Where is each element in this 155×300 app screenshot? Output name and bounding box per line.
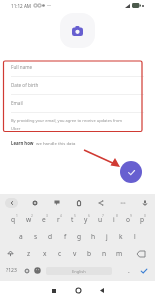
button[interactable]: f <box>58 228 72 245</box>
staticText: g <box>77 232 82 241</box>
button[interactable]: d <box>43 228 58 245</box>
staticText: ?123 <box>6 267 17 274</box>
staticText: l <box>134 232 136 241</box>
button[interactable]: Email <box>11 95 144 113</box>
button[interactable]: k <box>114 228 128 245</box>
button[interactable]: a <box>13 228 28 245</box>
staticText: 5 <box>74 214 76 218</box>
staticText: English <box>72 269 86 274</box>
button[interactable]: w <box>21 211 36 228</box>
button[interactable]: n <box>97 245 112 262</box>
button[interactable]: Emoji <box>32 262 43 279</box>
button[interactable]: Learn how <box>11 140 76 146</box>
button[interactable]: Stickers <box>52 198 62 208</box>
staticText: By providing your email, you agree to re… <box>11 118 123 131</box>
button[interactable]: Date of birth <box>11 77 144 95</box>
button[interactable]: p <box>135 211 149 228</box>
staticText: 11:12 AM <box>11 3 32 9</box>
staticText: w <box>26 215 32 224</box>
button[interactable]: Enter <box>134 262 154 279</box>
button[interactable]: Settings <box>21 262 32 279</box>
staticText: n <box>102 249 107 258</box>
staticText: t <box>71 215 74 224</box>
button[interactable]: Expand toolbar <box>5 198 18 208</box>
staticText: Learn how <box>11 140 34 146</box>
staticText: y <box>84 215 88 224</box>
staticText: v <box>73 249 77 258</box>
button[interactable]: Share <box>96 198 106 208</box>
staticText: 4 <box>60 214 62 218</box>
staticText: we handle this data <box>36 140 76 146</box>
button[interactable]: Microphone <box>140 198 150 208</box>
button[interactable]: Shift <box>0 245 21 262</box>
button[interactable]: Full name <box>11 59 144 77</box>
staticText: a <box>19 232 23 241</box>
staticText: d <box>48 232 53 241</box>
staticText: j <box>106 232 108 241</box>
button[interactable]: s <box>28 228 43 245</box>
staticText: r <box>57 215 60 224</box>
button[interactable]: Add photo <box>60 13 95 48</box>
staticText: 0 <box>144 214 146 218</box>
button[interactable]: x <box>37 245 52 262</box>
button[interactable]: Settings <box>30 198 40 208</box>
button[interactable]: Home <box>66 281 90 300</box>
button[interactable]: r <box>51 211 65 228</box>
staticText: o <box>126 215 130 224</box>
staticText: p <box>140 215 145 224</box>
staticText: h <box>91 232 96 241</box>
staticText: 6 <box>88 214 90 218</box>
staticText: m <box>116 249 123 258</box>
staticText: . <box>128 266 130 275</box>
button[interactable]: . <box>123 262 134 279</box>
button[interactable]: l <box>128 228 142 245</box>
staticText: q <box>11 215 16 224</box>
staticText: b <box>87 249 92 258</box>
button[interactable]: English <box>46 267 112 275</box>
button[interactable]: Back <box>90 281 114 300</box>
button[interactable]: b <box>82 245 97 262</box>
staticText: k <box>119 232 123 241</box>
staticText: Email <box>11 100 23 106</box>
staticText: z <box>27 249 31 258</box>
button[interactable]: q <box>6 211 21 228</box>
staticText: x <box>43 249 47 258</box>
button[interactable]: t <box>65 211 79 228</box>
button[interactable]: Backspace <box>127 245 155 262</box>
staticText: c <box>58 249 62 258</box>
button[interactable]: h <box>86 228 100 245</box>
button[interactable]: m <box>112 245 127 262</box>
staticText: 7 <box>102 214 104 218</box>
staticText: 8 <box>116 214 118 218</box>
button[interactable]: e <box>36 211 51 228</box>
staticText: u <box>98 215 103 224</box>
button[interactable]: c <box>52 245 67 262</box>
button[interactable]: g <box>72 228 86 245</box>
button[interactable]: z <box>21 245 37 262</box>
button[interactable]: y <box>79 211 93 228</box>
button[interactable]: i <box>107 211 121 228</box>
button[interactable]: Clipboard <box>74 198 84 208</box>
button[interactable]: j <box>100 228 114 245</box>
staticText: s <box>34 232 38 241</box>
staticText: 3 <box>46 214 48 218</box>
staticText: Date of birth <box>11 82 39 88</box>
staticText: e <box>42 215 46 224</box>
staticText: i <box>113 215 115 224</box>
staticText: f <box>64 232 67 241</box>
button[interactable]: u <box>93 211 107 228</box>
button[interactable]: ?123 <box>1 262 21 279</box>
staticText: 9 <box>130 214 132 218</box>
staticText: Full name <box>11 64 33 70</box>
staticText: 1 <box>16 214 18 218</box>
button[interactable]: o <box>121 211 135 228</box>
button[interactable]: v <box>67 245 82 262</box>
button[interactable]: Confirm <box>120 161 142 183</box>
button[interactable]: More options <box>118 198 128 208</box>
staticText: 2 <box>31 214 33 218</box>
button[interactable]: Recents <box>42 281 66 300</box>
